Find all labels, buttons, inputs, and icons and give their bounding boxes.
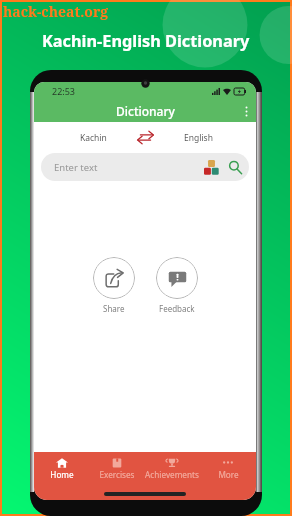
staticText: English xyxy=(184,132,213,144)
staticText: Home xyxy=(50,469,74,480)
button[interactable]: Kachin xyxy=(70,122,116,153)
button[interactable]: Achievements xyxy=(144,452,200,500)
button[interactable]: Share xyxy=(93,257,135,314)
button[interactable]: More xyxy=(200,452,256,500)
staticText: More xyxy=(218,469,239,480)
button[interactable]: Exercises xyxy=(89,452,144,500)
staticText: Exercises xyxy=(99,469,135,480)
staticText: Enter text xyxy=(54,161,201,174)
button[interactable]: Enter text xyxy=(41,153,249,181)
staticText: Kachin-English Dictionary xyxy=(42,30,250,52)
button[interactable]: Feedback xyxy=(156,257,198,314)
button[interactable]: Home xyxy=(34,452,89,500)
staticText: Kachin xyxy=(80,132,107,144)
button[interactable]: Swap languages xyxy=(136,122,155,153)
staticText: 22:53 xyxy=(52,85,76,97)
button[interactable]: Alphabet blocks xyxy=(201,153,221,181)
button[interactable]: English xyxy=(175,122,221,153)
staticText: hack-cheat.org xyxy=(3,2,109,21)
button[interactable]: More options xyxy=(236,100,256,122)
staticText: Dictionary xyxy=(116,103,175,119)
staticText: Feedback xyxy=(159,303,195,314)
staticText: Achievements xyxy=(145,469,199,480)
staticText: Share xyxy=(103,303,125,314)
button[interactable]: Search xyxy=(225,153,245,181)
